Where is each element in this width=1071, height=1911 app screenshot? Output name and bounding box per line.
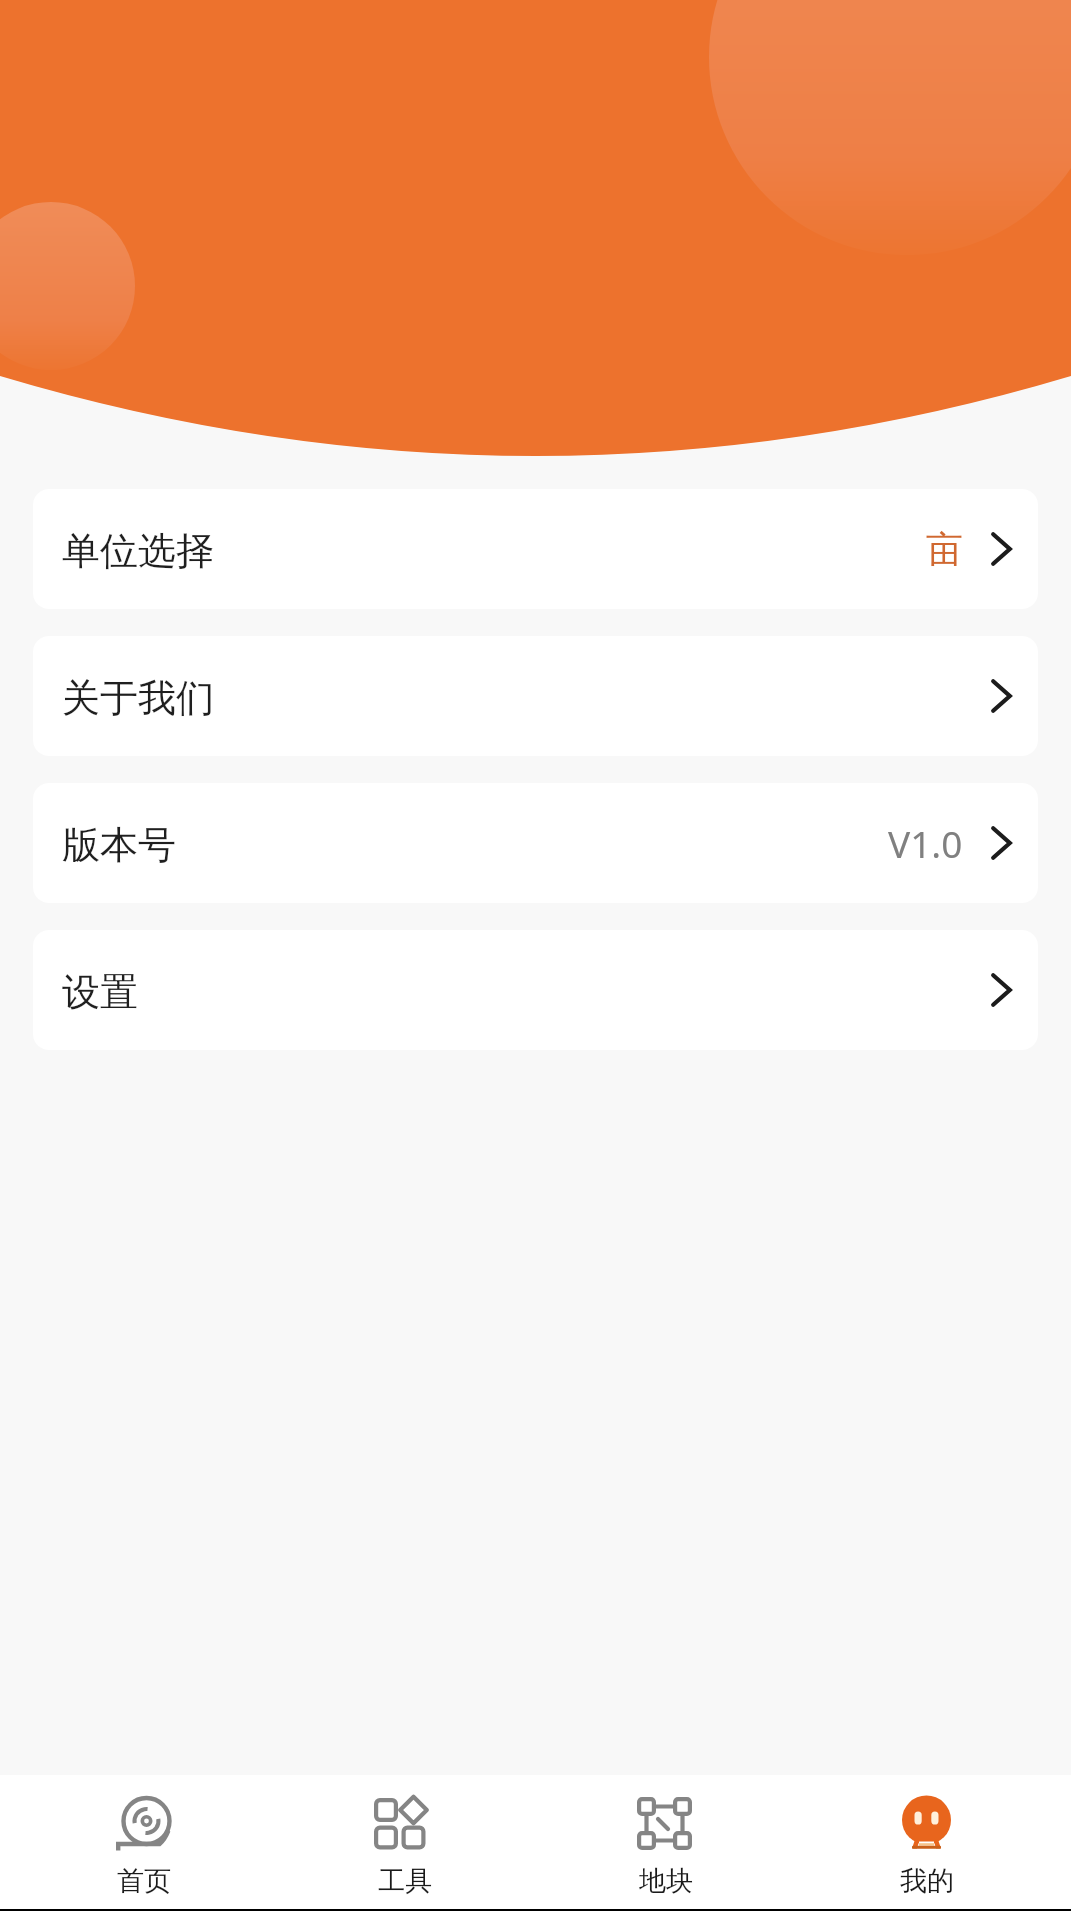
button[interactable]: 设置 [33, 930, 1038, 1050]
staticText: 我的 [900, 1864, 954, 1898]
staticText: 版本号 [62, 821, 176, 869]
button[interactable]: 首页 [14, 1775, 274, 1909]
button[interactable]: 单位选择 [33, 489, 1038, 609]
staticText: 首页 [117, 1864, 171, 1898]
staticText: 关于我们 [62, 674, 214, 722]
button[interactable]: 版本号 [33, 783, 1038, 903]
button[interactable]: 关于我们 [33, 636, 1038, 756]
staticText: 工具 [378, 1864, 432, 1898]
button[interactable]: 我的 [796, 1775, 1057, 1909]
staticText: 地块 [639, 1864, 693, 1898]
button[interactable]: 工具 [274, 1775, 535, 1909]
staticText: 设置 [62, 968, 138, 1016]
staticText: V1.0 [888, 818, 963, 868]
staticText: 单位选择 [62, 527, 214, 575]
button[interactable]: 地块 [535, 1775, 796, 1909]
staticText: 亩 [926, 526, 963, 573]
